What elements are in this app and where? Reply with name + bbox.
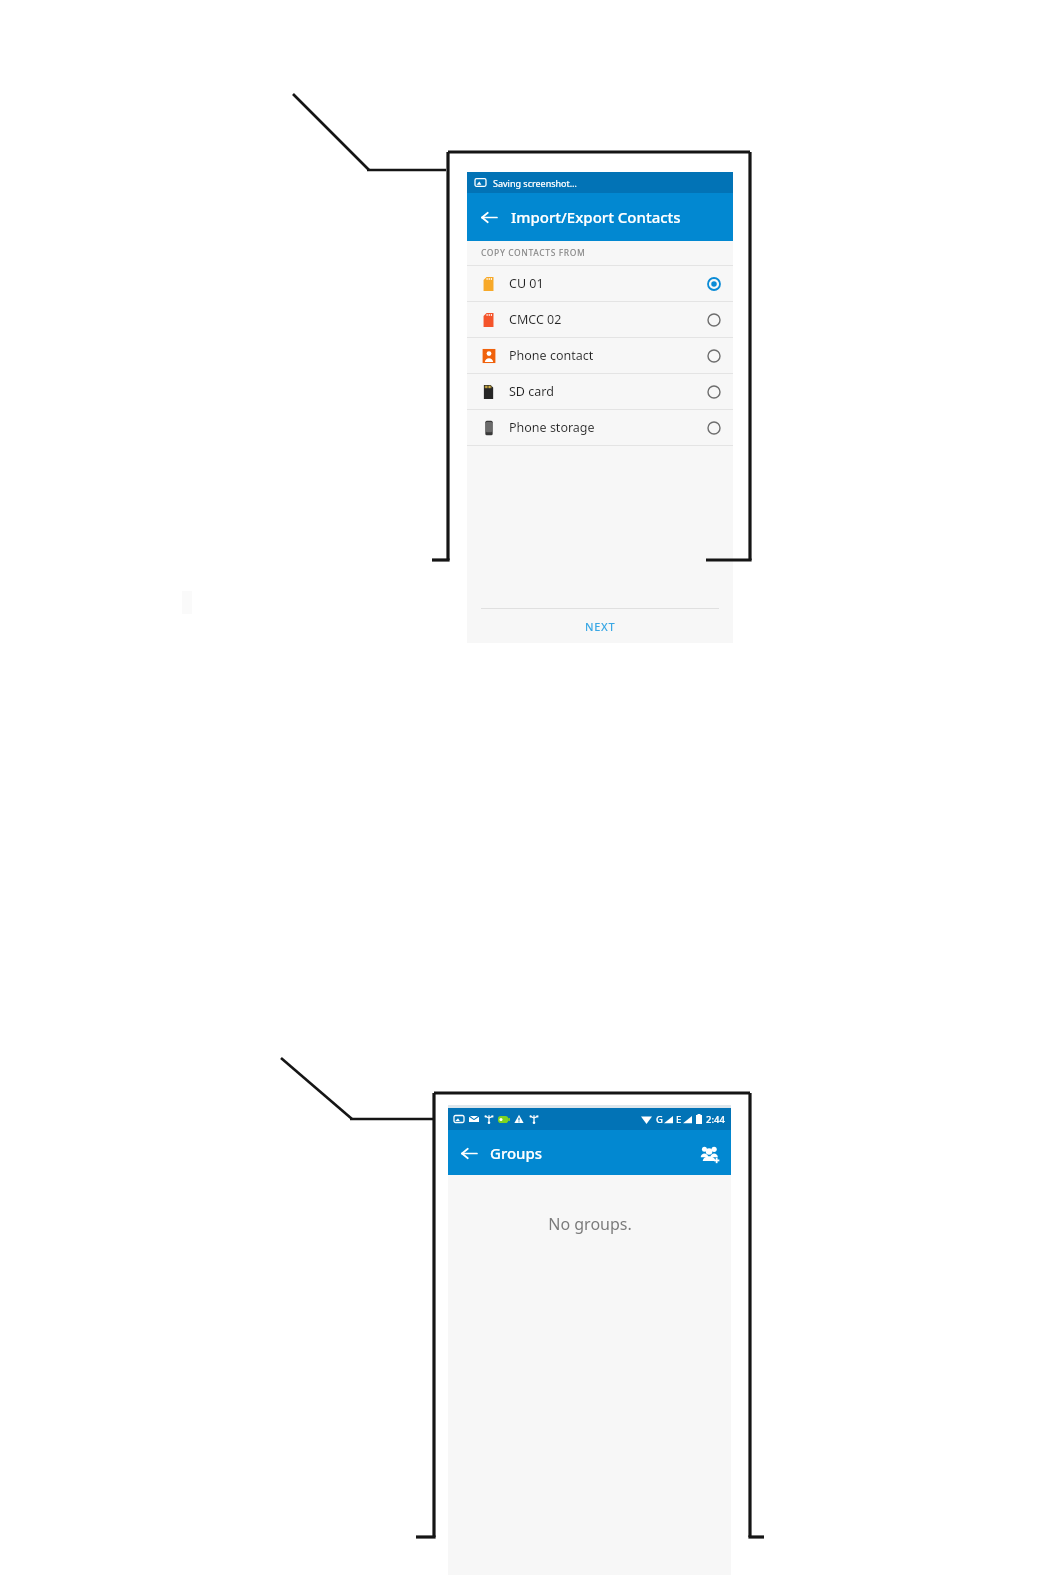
button[interactable]: SD card (467, 374, 733, 409)
button[interactable]: CU 01 (467, 266, 733, 301)
staticText: G (656, 1113, 663, 1126)
button[interactable]: Phone contact (467, 338, 733, 373)
staticText: E (676, 1113, 682, 1126)
staticText: CU 01 (509, 275, 544, 292)
staticText: Phone storage (509, 419, 595, 436)
staticText: Saving screenshot… (493, 177, 577, 189)
button[interactable]: Add group (687, 1131, 731, 1175)
staticText: COPY CONTACTS FROM (481, 247, 586, 259)
button[interactable]: Back (448, 1132, 490, 1174)
staticText: SD card (509, 383, 554, 400)
button[interactable]: CMCC 02 (467, 302, 733, 337)
staticText: 2:44 (706, 1113, 725, 1126)
staticText: No groups. (548, 1213, 632, 1235)
button[interactable]: NEXT (467, 609, 733, 643)
button[interactable]: Phone storage (467, 410, 733, 445)
staticText: NEXT (585, 619, 616, 634)
staticText: Groups (490, 1143, 543, 1163)
button[interactable]: Back (467, 195, 511, 239)
staticText: Import/Export Contacts (511, 207, 681, 227)
staticText: CMCC 02 (509, 311, 562, 328)
staticText: Phone contact (509, 347, 594, 364)
